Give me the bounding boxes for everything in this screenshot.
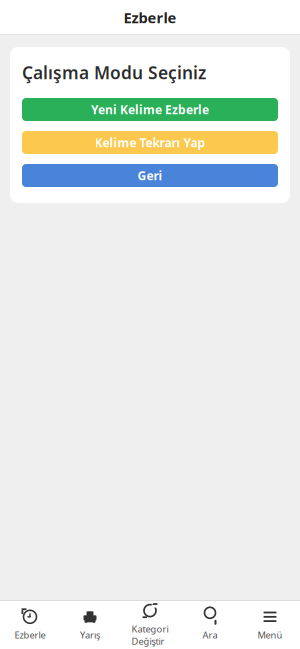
staticText: Kelime Tekrarı Yap (94, 134, 205, 150)
staticText: Ara (202, 629, 217, 641)
staticText: Ezberle (123, 8, 176, 27)
button[interactable]: Yeni Kelime Ezberle (22, 98, 278, 121)
staticText: Çalışma Modu Seçiniz (22, 61, 206, 84)
staticText: Yeni Kelime Ezberle (91, 101, 209, 117)
button[interactable]: Kelime Tekrarı Yap (22, 131, 278, 154)
staticText: Yarış (80, 629, 100, 641)
staticText: Geri (137, 167, 162, 183)
button[interactable]: Kategori Değiştir (120, 600, 180, 648)
button[interactable]: Yarış (60, 600, 120, 648)
button[interactable]: Ezberle (0, 600, 60, 648)
staticText: Ezberle (14, 629, 45, 641)
button[interactable]: Geri (22, 164, 278, 187)
staticText: Kategori Değiştir (131, 623, 168, 647)
staticText: Menü (257, 629, 282, 641)
button[interactable]: Menü (240, 600, 300, 648)
button[interactable]: Ara (180, 600, 240, 648)
